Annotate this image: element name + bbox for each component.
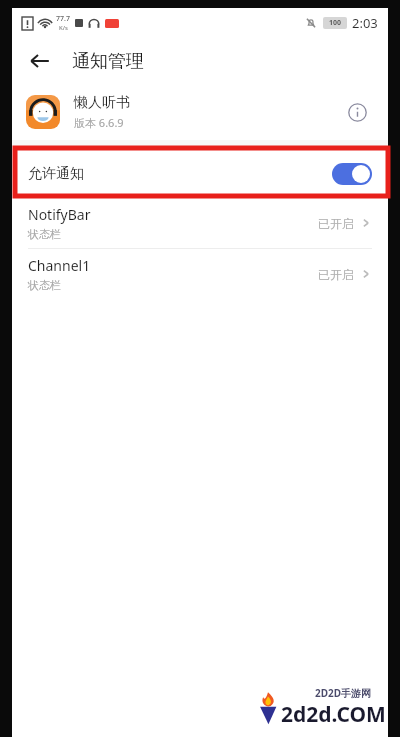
button[interactable]: Channel1 xyxy=(12,249,388,299)
staticText: 懒人听书 xyxy=(74,94,130,112)
button[interactable]: Back xyxy=(20,41,60,81)
staticText: 允许通知 xyxy=(28,165,84,183)
staticText: K/s xyxy=(59,24,68,32)
button[interactable]: Allow notifications toggle xyxy=(332,163,372,185)
button[interactable]: App info xyxy=(340,95,374,129)
staticText: 状态栏 xyxy=(28,278,61,292)
button[interactable]: 允许通知 xyxy=(12,150,388,198)
staticText: 通知管理 xyxy=(72,50,144,73)
staticText: 2D2D手游网 xyxy=(315,686,372,700)
button[interactable]: NotifyBar xyxy=(12,198,388,248)
staticText: 2d2d.COM xyxy=(281,700,386,729)
staticText: 状态栏 xyxy=(28,227,61,241)
staticText: NotifyBar xyxy=(28,205,91,224)
staticText: 77.7 xyxy=(56,14,70,24)
staticText: 100 xyxy=(329,18,342,28)
staticText: Channel1 xyxy=(28,256,91,275)
staticText: 版本 6.6.9 xyxy=(74,115,124,130)
staticText: 已开启 xyxy=(318,216,354,231)
button[interactable]: 懒人听书 xyxy=(12,84,388,140)
staticText: 已开启 xyxy=(318,267,354,282)
staticText: 2:03 xyxy=(352,14,378,32)
